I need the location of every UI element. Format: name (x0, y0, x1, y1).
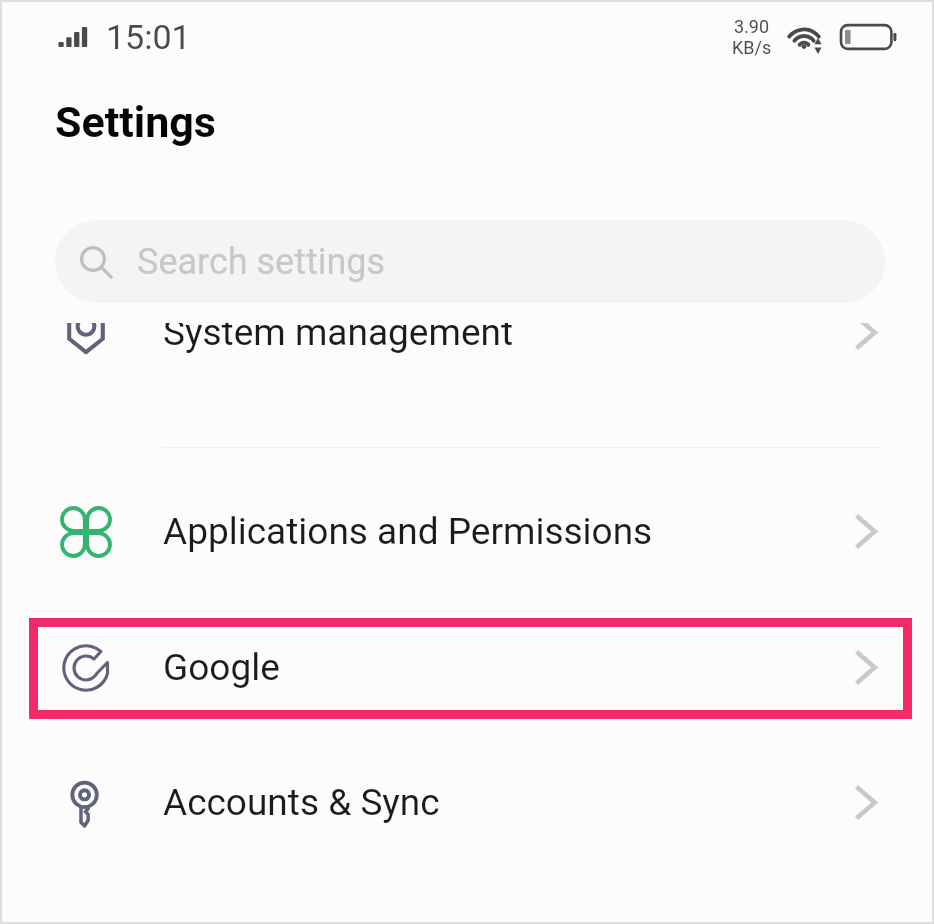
button[interactable]: Google (2, 600, 932, 735)
staticText: Google (163, 646, 280, 689)
staticText: KB/s (732, 37, 772, 58)
staticText: Accounts & Sync (163, 781, 440, 824)
button[interactable]: System management (2, 323, 932, 400)
staticText: 15:01 (106, 17, 191, 57)
button[interactable]: Search settings (55, 220, 885, 303)
staticText: System management (163, 323, 514, 354)
staticText: Search settings (137, 241, 386, 283)
staticText: Applications and Permissions (163, 510, 653, 553)
staticText: 3.90 (734, 16, 770, 37)
button[interactable]: Applications and Permissions (2, 464, 932, 599)
button[interactable]: Accounts & Sync (2, 735, 932, 870)
staticText: Settings (55, 97, 216, 147)
